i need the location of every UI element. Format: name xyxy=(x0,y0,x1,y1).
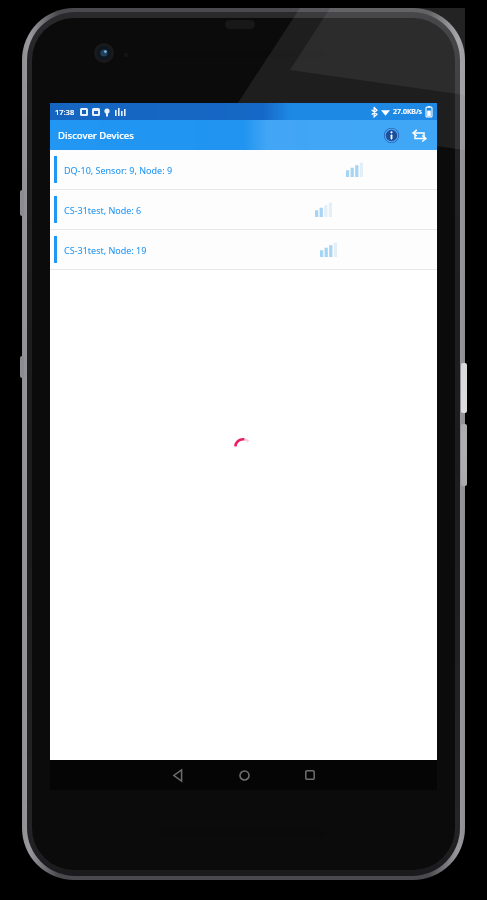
staticText: Discover Devices xyxy=(58,129,134,142)
other: Signal strength xyxy=(315,202,332,217)
button[interactable]: Recent apps xyxy=(288,760,332,790)
button[interactable]: DQ-10, Sensor: 9, Node: 9 xyxy=(50,150,437,189)
staticText: 27.0KB/s xyxy=(393,107,423,117)
staticText: DQ-10, Sensor: 9, Node: 9 xyxy=(64,164,173,176)
button[interactable]: CS-31test, Node: 6 xyxy=(50,190,437,229)
button[interactable]: Home xyxy=(222,760,266,790)
button[interactable]: CS-31test, Node: 19 xyxy=(50,230,437,269)
other: Signal strength xyxy=(320,242,337,257)
staticText: 17:38 xyxy=(55,107,75,117)
button[interactable]: Information xyxy=(377,121,405,149)
button[interactable]: Back xyxy=(156,760,200,790)
other: Signal strength xyxy=(346,162,363,177)
staticText: CS-31test, Node: 19 xyxy=(64,244,147,256)
staticText: CS-31test, Node: 6 xyxy=(64,204,142,216)
button[interactable]: Refresh devices xyxy=(405,121,433,149)
